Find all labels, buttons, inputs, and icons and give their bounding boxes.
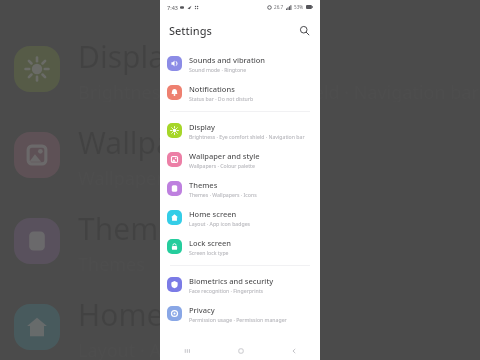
button[interactable]: Notifications	[160, 78, 320, 107]
staticText: Settings	[169, 23, 212, 38]
button[interactable]: Sounds and vibration	[160, 49, 320, 78]
staticText: Brightness · Eye comfort shield · Naviga…	[78, 80, 479, 102]
staticText: Home screen	[189, 209, 237, 219]
staticText: Sound mode · Ringtone	[189, 66, 247, 73]
button[interactable]: Wallpaper and style	[160, 145, 320, 174]
staticText: 26.7	[274, 4, 284, 10]
staticText: Status bar · Do not disturb	[189, 95, 254, 102]
staticText: Display	[189, 122, 216, 132]
staticText: Display	[78, 36, 181, 77]
staticText: Themes · Wallpapers · Icons	[189, 191, 257, 198]
staticText: Home sc	[78, 294, 200, 335]
button[interactable]: Privacy	[160, 299, 320, 328]
staticText: Layout · App icon badges	[78, 338, 290, 360]
staticText: Privacy	[189, 305, 215, 315]
staticText: 7:43	[167, 4, 178, 11]
button[interactable]: Lock screen	[160, 232, 320, 261]
button[interactable]: Search	[293, 19, 315, 41]
button[interactable]: Home	[214, 342, 267, 360]
staticText: Notifications	[189, 84, 235, 94]
staticText: Screen lock type	[189, 249, 229, 256]
staticText: Wallpaper	[78, 122, 221, 163]
button[interactable]: Display	[160, 116, 320, 145]
button[interactable]: Back	[267, 342, 320, 360]
staticText: Biometrics and security	[189, 276, 274, 286]
button[interactable]: Recent apps	[160, 342, 214, 360]
staticText: Layout · App icon badges	[189, 220, 251, 227]
staticText: Sounds and vibration	[189, 55, 266, 65]
staticText: Wallpapers · Colour palette	[189, 162, 255, 169]
staticText: Permission usage · Permission manager	[189, 316, 287, 323]
staticText: Wallpapers · Colour palette	[78, 166, 307, 188]
staticText: Brightness · Eye comfort shield · Naviga…	[189, 133, 305, 140]
button[interactable]: Home screen	[160, 203, 320, 232]
staticText: Themes	[78, 208, 190, 249]
button[interactable]: Biometrics and security	[160, 270, 320, 299]
button[interactable]: Themes	[160, 174, 320, 203]
staticText: Wallpaper and style	[189, 151, 260, 161]
staticText: Face recognition · Fingerprints	[189, 287, 264, 294]
staticText: Themes	[189, 180, 218, 190]
staticText: Lock screen	[189, 238, 232, 248]
staticText: 53%	[294, 4, 304, 10]
